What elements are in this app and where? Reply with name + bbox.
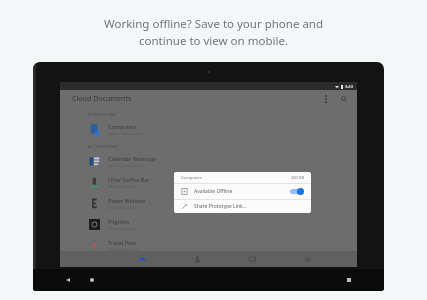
button[interactable]: Comments	[242, 251, 262, 267]
staticText: Edited 2 minutes ago	[108, 131, 142, 136]
staticText: Calendar Redesign	[108, 155, 157, 162]
button[interactable]: More options	[321, 94, 331, 104]
button[interactable]: Settings	[297, 251, 317, 267]
button[interactable]: Available offline toggle	[289, 187, 304, 196]
staticText: Edited 2 days ago	[108, 184, 137, 189]
staticText: RECENTLY USED	[88, 112, 116, 117]
button[interactable]: Travel Pass	[60, 235, 357, 256]
button[interactable]: Calendar Redesign	[60, 151, 357, 172]
staticText: Working offline? Save to your phone and …	[40, 16, 387, 48]
staticText: Edited 4 days ago	[108, 205, 137, 210]
staticText: 3:43	[345, 84, 353, 89]
staticText: Filter Coffee Bar	[108, 176, 150, 183]
staticText: ALL DOCUMENTS	[88, 144, 118, 149]
button[interactable]: Pilgrims	[60, 214, 357, 235]
staticText: Travel Pass	[108, 239, 137, 246]
staticText: Edited 12 minutes ago	[108, 163, 144, 168]
staticText: Edited 1 week ago	[108, 226, 137, 231]
button[interactable]: Search	[339, 94, 349, 104]
staticText: Computers	[181, 175, 202, 180]
button[interactable]: Paper Website	[60, 193, 357, 214]
button[interactable]: Recents	[344, 275, 354, 285]
button[interactable]: Home	[87, 275, 97, 285]
staticText: Computers	[108, 123, 137, 130]
staticText: Cloud Documents	[72, 94, 132, 104]
staticText: 200 KB	[291, 175, 304, 180]
button[interactable]: Available Offline	[174, 184, 311, 199]
staticText: Share Prototype Link...	[194, 203, 247, 210]
button[interactable]: Back	[63, 275, 73, 285]
staticText: Edited 2 weeks ago	[108, 247, 139, 252]
button[interactable]: People	[187, 251, 207, 267]
button[interactable]: Share Prototype Link...	[174, 200, 311, 213]
button[interactable]: Computers	[60, 119, 357, 140]
button[interactable]: Cloud	[132, 251, 152, 267]
staticText: Paper Website	[108, 197, 146, 204]
staticText: Available Offline	[194, 188, 233, 195]
staticText: Pilgrims	[108, 218, 130, 225]
button[interactable]: Filter Coffee Bar	[60, 172, 357, 193]
